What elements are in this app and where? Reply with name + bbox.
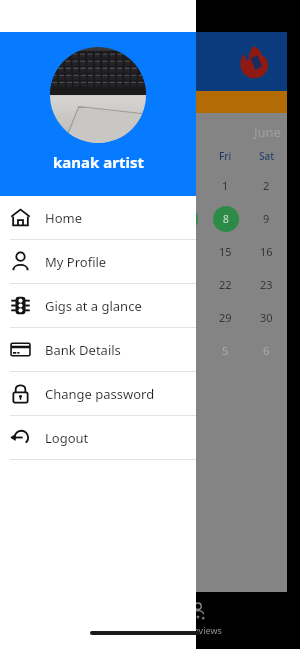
button[interactable]: 26 [96, 310, 109, 325]
button[interactable]: 5 [222, 343, 229, 358]
button[interactable]: 19 [96, 277, 109, 292]
staticText: Sat [259, 149, 275, 163]
button[interactable]: 23 [260, 277, 273, 292]
button[interactable]: My Reviews [169, 597, 226, 640]
staticText: Available Dates [21, 377, 88, 389]
button[interactable]: Change password [0, 372, 196, 415]
staticText: kanak artist [53, 152, 144, 172]
button[interactable]: 2 [58, 343, 65, 358]
staticText: Bank Details [45, 341, 121, 359]
staticText: Gigs at a glance [45, 297, 142, 315]
staticText: Selected dates are not available [12, 94, 190, 110]
button[interactable]: 24 [14, 310, 27, 325]
button[interactable]: 15 [219, 244, 232, 259]
button[interactable]: 29 [219, 310, 232, 325]
button[interactable]: Gigs at a glance [0, 284, 196, 327]
button[interactable]: Logout [0, 416, 196, 459]
button[interactable]: 30 [260, 310, 273, 325]
button[interactable]: Profile photo [50, 47, 146, 143]
button[interactable]: My Profile [0, 240, 196, 283]
button[interactable]: 2 [263, 178, 270, 193]
button[interactable]: 12 [96, 244, 109, 259]
staticText: 8 [223, 212, 229, 226]
button[interactable]: 21 [178, 277, 191, 292]
staticText: Tu [97, 149, 109, 163]
other: App logo [237, 45, 271, 79]
button[interactable]: Bank Details [0, 328, 196, 371]
button[interactable]: 18 [55, 277, 68, 292]
button[interactable]: 25 [55, 310, 68, 325]
staticText: Change password [45, 385, 155, 403]
button[interactable]: 27 [137, 310, 150, 325]
staticText: My Reviews [173, 624, 222, 636]
button[interactable]: 1 [222, 178, 229, 193]
button[interactable]: 20 [137, 277, 150, 292]
button[interactable]: 10 [14, 244, 27, 259]
staticText: Logout [45, 429, 89, 447]
button[interactable]: 17 [14, 277, 27, 292]
button[interactable]: 16 [260, 244, 273, 259]
button[interactable]: 9 [263, 211, 270, 226]
button[interactable]: Home [0, 196, 196, 239]
staticText: (You cannot make changes to these dates) [10, 392, 189, 404]
staticText: Home [45, 209, 82, 227]
button[interactable]: 4 [58, 211, 65, 226]
button[interactable]: 6 [263, 343, 270, 358]
button[interactable]: 11 [55, 244, 68, 259]
staticText: We [136, 149, 151, 163]
staticText: Mo [54, 149, 70, 163]
button[interactable]: 7 [172, 206, 198, 232]
button[interactable]: 3 [17, 211, 24, 226]
button[interactable]: 22 [219, 277, 232, 292]
button[interactable]: 1 [17, 343, 24, 358]
staticText: My Profile [45, 253, 107, 271]
button[interactable]: 8 [213, 206, 239, 232]
staticText: Fri [219, 149, 232, 163]
staticText: June [254, 123, 281, 141]
button[interactable]: 3 [99, 343, 106, 358]
